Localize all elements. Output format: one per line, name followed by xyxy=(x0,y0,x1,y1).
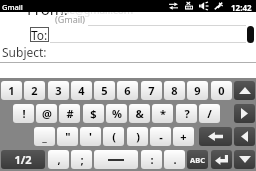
button[interactable]: ( xyxy=(103,127,124,146)
staticText: : xyxy=(150,152,154,167)
staticText: ABC xyxy=(190,155,205,165)
button[interactable]: # xyxy=(59,104,80,123)
staticText: 1 xyxy=(8,83,15,98)
staticText: @ xyxy=(42,106,52,121)
button[interactable]: Left xyxy=(234,127,255,146)
staticText: % xyxy=(112,106,122,121)
staticText: . xyxy=(173,152,177,167)
button[interactable]: ABC xyxy=(187,150,208,169)
staticText: 8 xyxy=(171,83,178,98)
button[interactable]: Right xyxy=(234,104,255,123)
staticText: # xyxy=(66,106,74,121)
staticText: ? xyxy=(184,106,190,121)
button[interactable]: ' xyxy=(80,127,101,146)
staticText: 9 xyxy=(194,83,201,98)
staticText: 0 xyxy=(218,83,225,98)
staticText: me@gmail.com xyxy=(60,3,134,17)
staticText: Gmail xyxy=(2,2,23,12)
button[interactable]: 4 xyxy=(71,81,92,100)
button[interactable]: 1 xyxy=(1,81,22,100)
staticText: ; xyxy=(80,152,84,167)
button[interactable]: Space xyxy=(94,150,138,169)
button[interactable]: % xyxy=(106,104,127,123)
staticText: ! xyxy=(22,106,26,121)
button[interactable]: Up xyxy=(234,81,255,100)
button[interactable]: Enter xyxy=(211,150,232,169)
staticText: $ xyxy=(90,106,97,121)
button[interactable]: 2 xyxy=(24,81,45,100)
staticText: - xyxy=(159,129,163,144)
staticText: / xyxy=(207,106,212,121)
button[interactable]: 8 xyxy=(164,81,185,100)
button[interactable]: 0 xyxy=(211,81,232,100)
staticText: 1/2 xyxy=(14,152,32,167)
button[interactable]: ! xyxy=(13,104,34,123)
button[interactable]: . xyxy=(164,150,185,169)
button[interactable]: " xyxy=(57,127,78,146)
button[interactable]: $ xyxy=(83,104,104,123)
staticText: 7 xyxy=(148,83,155,98)
button[interactable]: Down xyxy=(234,150,255,169)
staticText: (Gmail) xyxy=(55,13,86,25)
button[interactable]: Backspace xyxy=(199,127,232,146)
staticText: 12:42 xyxy=(231,2,252,13)
button[interactable]: 5 xyxy=(94,81,115,100)
staticText: 4 xyxy=(78,83,85,98)
button[interactable]: 9 xyxy=(187,81,208,100)
staticText: ( xyxy=(112,129,116,144)
button[interactable]: @ xyxy=(36,104,57,123)
staticText: From: xyxy=(27,0,68,19)
button[interactable]: 6 xyxy=(117,81,138,100)
staticText: " xyxy=(65,129,71,144)
staticText: 3 xyxy=(55,83,62,98)
staticText: , xyxy=(57,152,61,167)
button[interactable]: 3 xyxy=(48,81,69,100)
button[interactable]: 1/2 xyxy=(1,150,45,169)
button[interactable]: , xyxy=(48,150,69,169)
button[interactable]: & xyxy=(129,104,150,123)
button[interactable]: 7 xyxy=(141,81,162,100)
button[interactable]: * xyxy=(152,104,173,123)
staticText: 6 xyxy=(124,83,131,98)
staticText: 5 xyxy=(101,83,108,98)
button[interactable]: ; xyxy=(71,150,92,169)
staticText: To: xyxy=(31,27,48,42)
staticText: _ xyxy=(42,129,47,144)
staticText: 2 xyxy=(31,83,38,98)
button[interactable]: ) xyxy=(127,127,148,146)
staticText: ) xyxy=(136,129,140,144)
staticText: + xyxy=(180,129,187,144)
staticText: * xyxy=(160,106,166,121)
button[interactable]: _ xyxy=(34,127,55,146)
staticText: Subject: xyxy=(2,44,47,60)
staticText: & xyxy=(135,106,144,121)
button[interactable]: : xyxy=(141,150,162,169)
staticText: ' xyxy=(89,129,92,144)
button[interactable]: To: xyxy=(30,27,49,42)
button[interactable]: ? xyxy=(176,104,197,123)
button[interactable]: + xyxy=(173,127,194,146)
button[interactable]: - xyxy=(150,127,171,146)
button[interactable]: / xyxy=(199,104,220,123)
